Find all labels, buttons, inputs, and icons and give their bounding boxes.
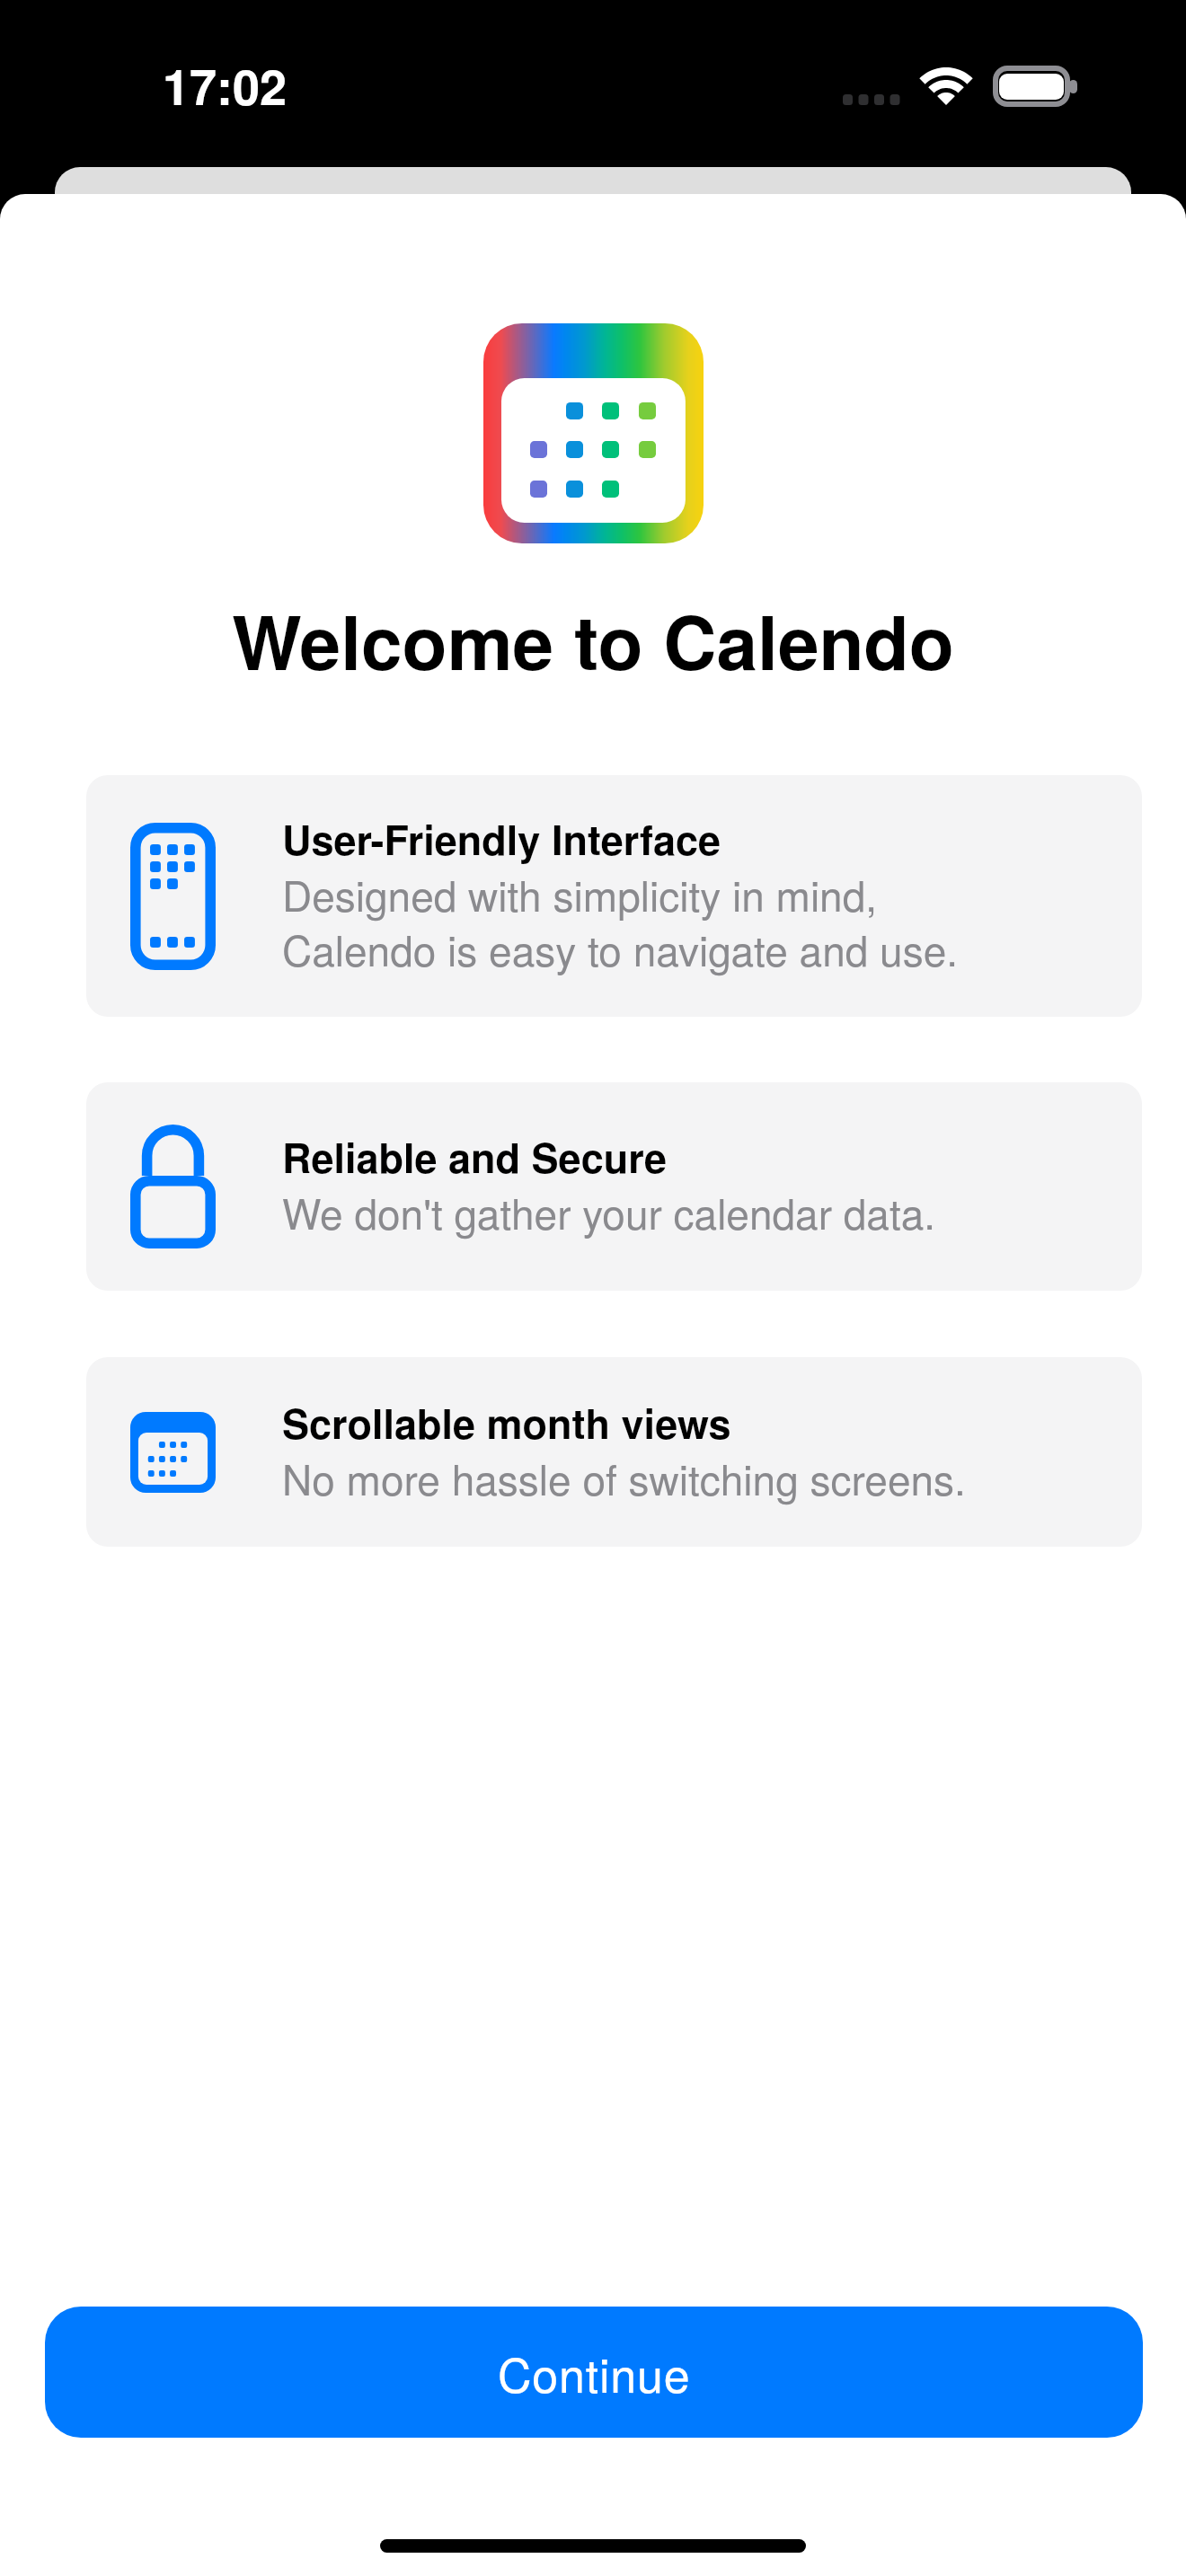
other: Scrollable month views [130,1412,216,1493]
staticText: Calendo is easy to navigate and use. [282,919,959,978]
staticText: User-Friendly Interface [282,809,721,867]
staticText: We don't gather your calendar data. [282,1182,936,1241]
staticText: No more hassle of switching screens. [282,1448,966,1507]
button[interactable]: Scrollable month views [86,1357,1142,1547]
staticText: Continue [498,2339,691,2405]
button[interactable]: User-friendly interface [86,775,1142,1017]
button[interactable]: Continue [45,2307,1143,2438]
staticText: 17:02 [163,50,288,119]
staticText: Scrollable month views [282,1393,731,1451]
staticText: Reliable and Secure [282,1127,667,1185]
staticText: Welcome to Calendo [0,587,1186,693]
button[interactable]: Reliable and secure [86,1082,1142,1291]
other: Calendo app icon [483,323,704,543]
other: Reliable and secure [130,1125,216,1248]
other: User-friendly interface [130,823,216,970]
staticText: Designed with simplicity in mind, [282,864,878,923]
